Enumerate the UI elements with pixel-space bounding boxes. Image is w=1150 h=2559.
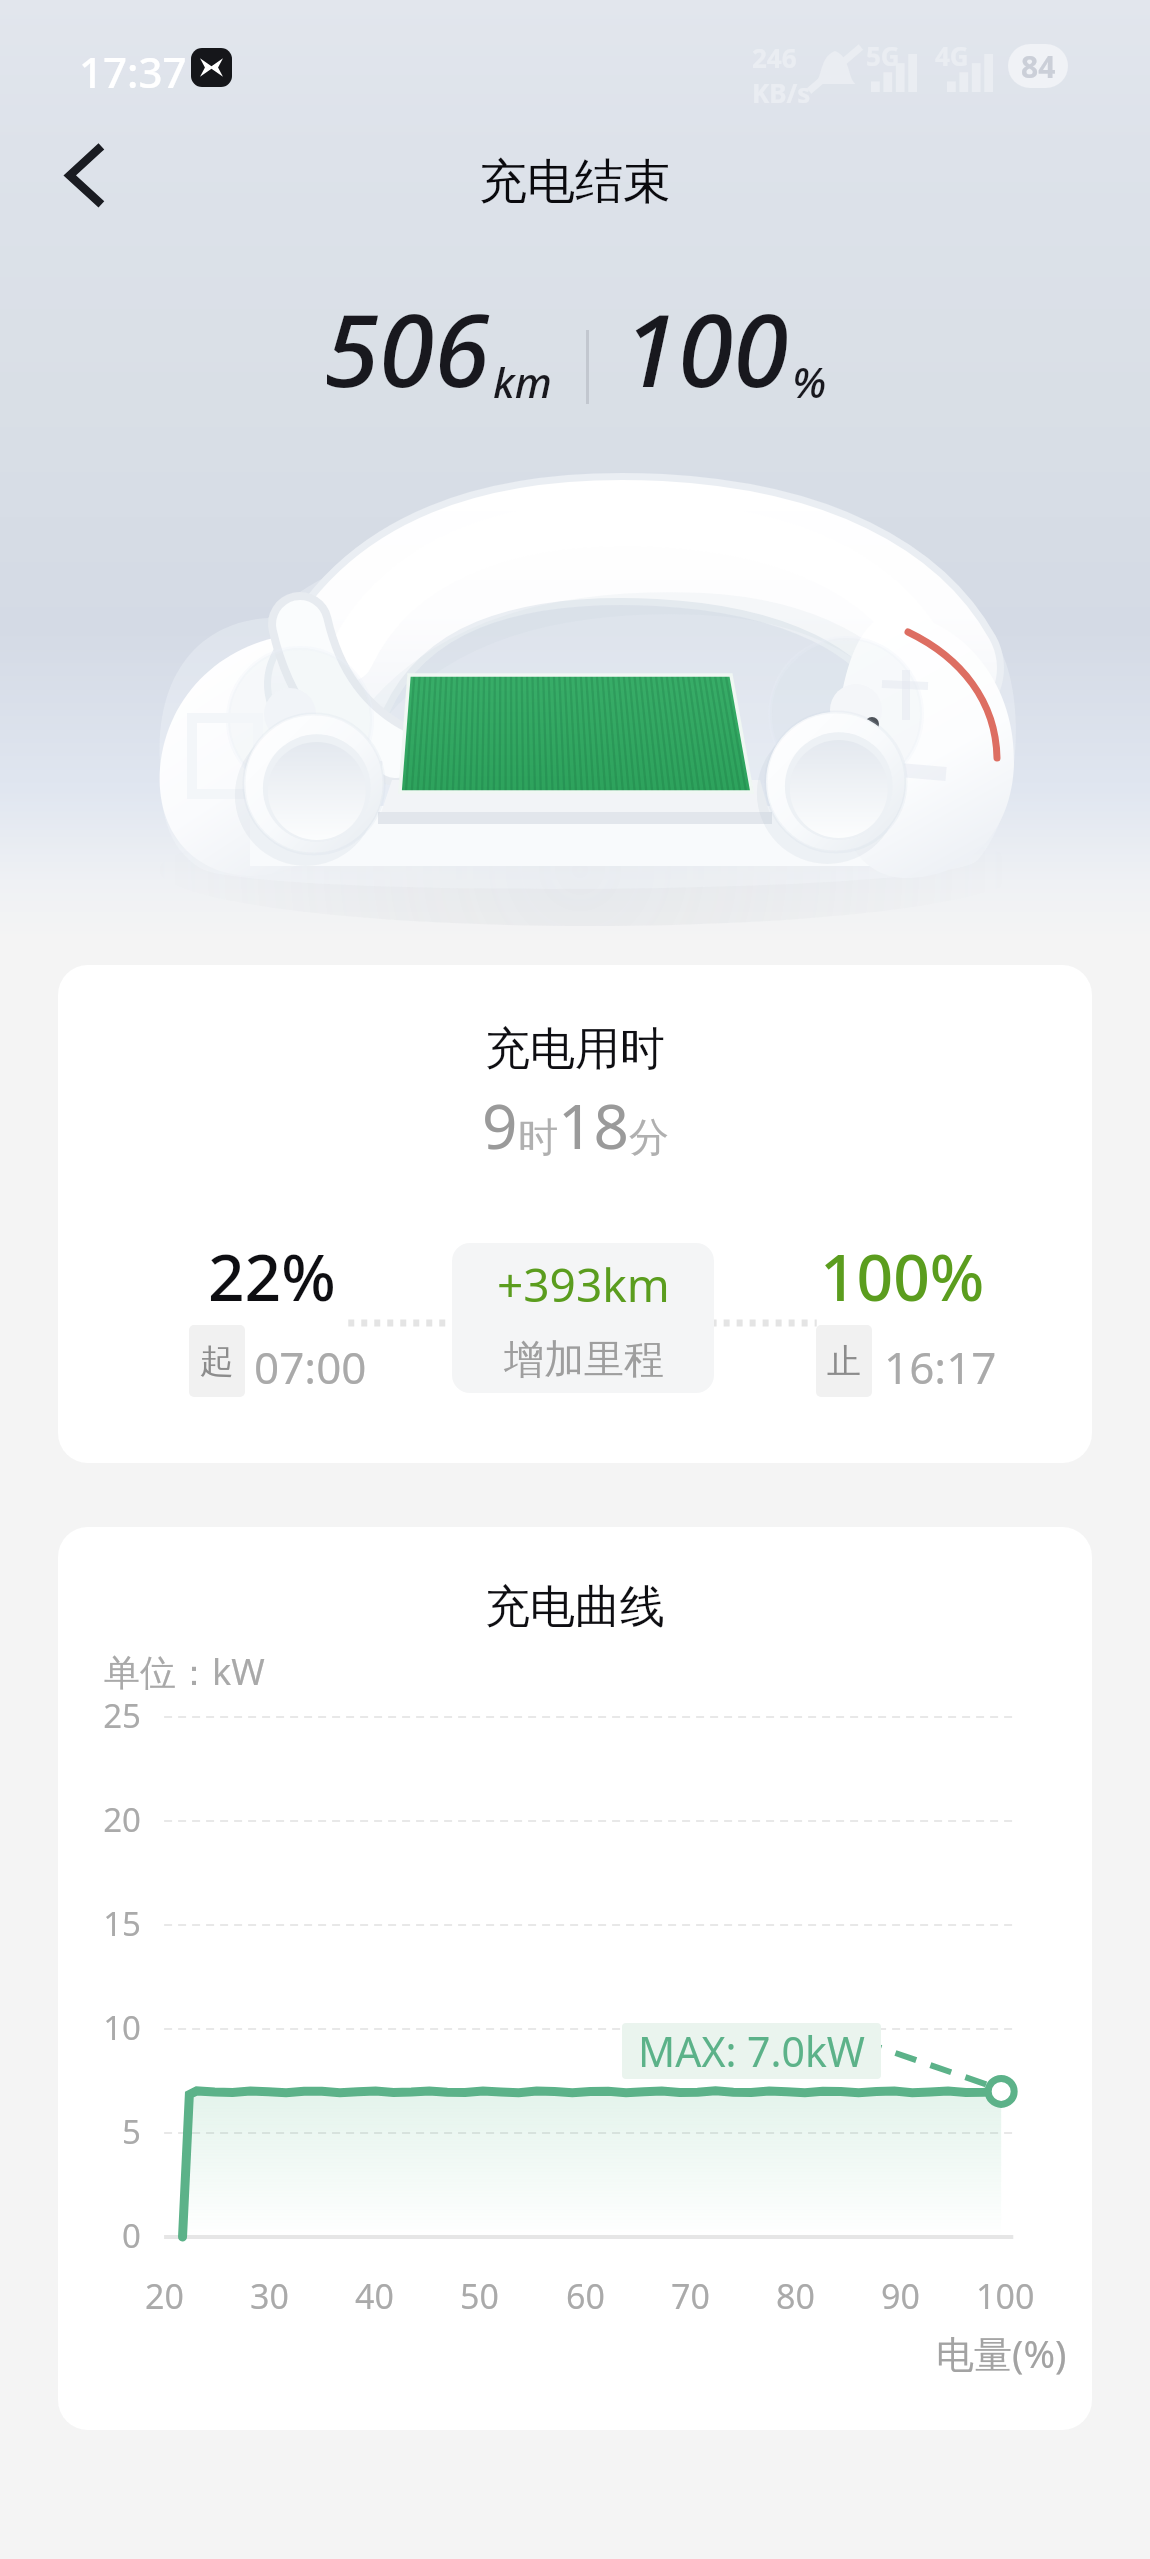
staticText: 40 <box>355 2273 394 2319</box>
staticText: 22% <box>208 1233 336 1320</box>
staticText: 时 <box>518 1112 558 1162</box>
staticText: +393km <box>497 1253 670 1316</box>
staticText: 充电结束 <box>479 152 671 212</box>
staticText: 246 <box>752 40 797 75</box>
staticText: 07:00 <box>254 1337 367 1397</box>
staticText: 17:37 <box>79 43 187 100</box>
staticText: 起 <box>200 1340 234 1383</box>
staticText: KB/s <box>752 75 811 110</box>
staticText: 充电用时 <box>485 1021 665 1078</box>
staticText: 10 <box>103 2005 141 2050</box>
staticText: 9 <box>482 1083 518 1167</box>
staticText: 100 <box>623 280 789 416</box>
staticText: 4G <box>935 38 969 73</box>
staticText: 增加里程 <box>504 1334 664 1384</box>
staticText: 25 <box>103 1693 141 1738</box>
staticText: 分 <box>629 1112 669 1162</box>
staticText: 100 <box>976 2273 1035 2319</box>
staticText: 50 <box>460 2273 499 2319</box>
staticText: 84 <box>1021 46 1056 87</box>
staticText: 充电曲线 <box>485 1579 665 1636</box>
staticText: % <box>792 353 827 410</box>
staticText: MAX: 7.0kW <box>638 2023 865 2079</box>
staticText: 电量(%) <box>936 2327 1067 2379</box>
staticText: 20 <box>145 2273 184 2319</box>
staticText: km <box>493 353 552 410</box>
staticText: 60 <box>566 2273 605 2319</box>
staticText: 100% <box>820 1233 985 1320</box>
staticText: 70 <box>671 2273 710 2319</box>
staticText: 5 <box>122 2109 141 2154</box>
staticText: 0 <box>122 2213 141 2258</box>
staticText: 16:17 <box>884 1337 997 1397</box>
staticText: 506 <box>324 280 490 416</box>
staticText: 15 <box>103 1901 141 1946</box>
staticText: 18 <box>558 1083 629 1167</box>
staticText: 5G <box>866 38 900 73</box>
staticText: 30 <box>250 2273 289 2319</box>
staticText: 止 <box>827 1340 861 1383</box>
staticText: 80 <box>776 2273 815 2319</box>
button[interactable]: 充电曲线 <box>58 1527 1092 2430</box>
staticText: 20 <box>103 1797 141 1842</box>
staticText: 90 <box>881 2273 920 2319</box>
staticText: 单位：kW <box>104 1647 265 1696</box>
button[interactable]: 充电用时 <box>58 965 1092 1463</box>
button[interactable]: Back <box>38 128 130 220</box>
